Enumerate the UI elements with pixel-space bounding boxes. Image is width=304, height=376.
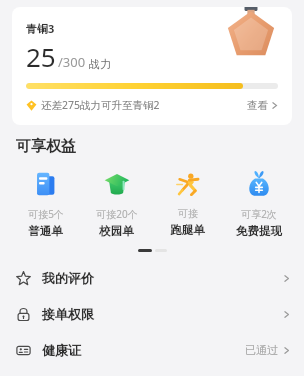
staticText: 可享2次 (241, 207, 277, 221)
button[interactable]: 可接20个 (81, 170, 152, 238)
staticText: 可接5个 (28, 207, 64, 221)
button[interactable]: 我的评价 (0, 260, 304, 296)
staticText: 已通过 (245, 343, 278, 357)
staticText: /300 (58, 53, 86, 71)
staticText: 我的评价 (42, 270, 94, 286)
staticText: 健康证 (42, 342, 81, 358)
button[interactable]: 健康证 (0, 332, 304, 368)
button[interactable]: 可接 (152, 170, 223, 237)
button[interactable]: 可接5个 (10, 170, 81, 238)
button[interactable]: 接单权限 (0, 296, 304, 332)
staticText: 还差275战力可升至青铜2 (41, 98, 160, 112)
staticText: 可享权益 (16, 137, 76, 156)
button[interactable]: 可享2次 (223, 170, 294, 238)
staticText: 跑腿单 (170, 223, 205, 237)
staticText: 可接 (178, 207, 198, 220)
staticText: 校园单 (99, 224, 134, 238)
staticText: 战力 (89, 57, 111, 71)
staticText: 免费提现 (236, 224, 282, 238)
staticText: 接单权限 (42, 306, 94, 322)
button[interactable]: 查看 (247, 99, 278, 112)
staticText: 青铜3 (26, 21, 55, 36)
staticText: 普通单 (28, 224, 63, 238)
staticText: 25 (26, 39, 56, 74)
other: 等级徽章 3级 (224, 7, 278, 58)
staticText: 可接20个 (96, 207, 138, 221)
staticText: 查看 (247, 99, 268, 112)
